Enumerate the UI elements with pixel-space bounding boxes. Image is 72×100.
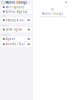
- staticText: Mobile Charge: [41, 12, 63, 15]
- staticText: Some Signal: [6, 28, 22, 31]
- button[interactable]: Ratings & Reviews: [1, 17, 32, 23]
- staticText: Wi-Fi Options: [6, 5, 24, 9]
- staticText: MOBILE: [2, 24, 7, 26]
- staticText: Mobile Charge: [5, 1, 27, 4]
- staticText: COMPUTER: [2, 34, 10, 36]
- button[interactable]: Some Signal: [1, 27, 32, 32]
- button[interactable]: Another Tool: [1, 42, 32, 47]
- staticText: Airline Agency: [6, 10, 27, 13]
- staticText: Ratings & Reviews: [6, 18, 25, 22]
- button[interactable]: Agent: [1, 36, 32, 41]
- staticText: Another Tool: [6, 42, 25, 46]
- button[interactable]: Wi-Fi Options: [1, 5, 32, 9]
- staticText: Select an option from the sidebar to beg…: [39, 16, 65, 17]
- button[interactable]: Account: [65, 1, 67, 3]
- button[interactable]: Airline Agency: [1, 9, 32, 14]
- staticText: Agent: [6, 37, 15, 41]
